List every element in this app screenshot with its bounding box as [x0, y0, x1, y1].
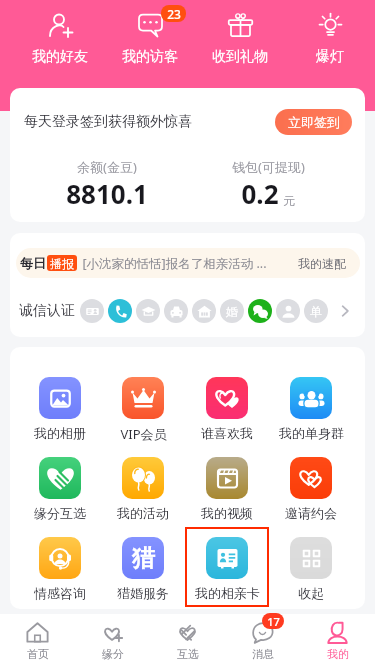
staticText: 每天登录签到获得额外惊喜 [24, 113, 192, 131]
button[interactable]: 我的 [300, 614, 375, 667]
staticText: 钱包(可提现) [232, 158, 305, 176]
button[interactable]: 余额(金豆) [26, 158, 187, 211]
button[interactable]: 谁喜欢我 [185, 367, 269, 447]
staticText: 我的速配 [298, 256, 346, 271]
button[interactable]: 学历认证 [136, 299, 160, 323]
button[interactable]: 互选 [150, 614, 225, 667]
staticText: 我的视频 [201, 505, 253, 521]
staticText: 立即签到 [288, 114, 340, 130]
staticText: 播报 [50, 256, 74, 271]
staticText: 每日 [20, 255, 46, 271]
button[interactable]: 手机认证 [108, 299, 132, 323]
button[interactable]: 收起 [269, 527, 353, 607]
button[interactable]: 每日 [16, 248, 360, 278]
button[interactable]: 诚信认证 [19, 297, 353, 325]
button[interactable]: 身份认证 [80, 299, 104, 323]
staticText: 23 [167, 6, 181, 22]
staticText: 谁喜欢我 [201, 425, 253, 441]
button[interactable]: 爆灯 [285, 0, 375, 88]
button[interactable]: 猎 [101, 527, 185, 607]
button[interactable]: 立即签到 [275, 109, 352, 135]
staticText: 我的好友 [32, 48, 88, 66]
staticText: 婚 [226, 304, 238, 319]
staticText: 我的活动 [117, 505, 169, 521]
staticText: 消息 [252, 647, 274, 661]
staticText: 收到礼物 [212, 48, 268, 66]
staticText: 爆灯 [316, 48, 344, 66]
button[interactable]: 婚 [220, 299, 244, 323]
staticText: 互选 [177, 647, 199, 661]
staticText: 我的相亲卡 [195, 585, 260, 601]
button[interactable]: 车辆认证 [164, 299, 188, 323]
button[interactable]: 我的视频 [185, 447, 269, 527]
button[interactable]: VIP会员 [101, 367, 185, 447]
button[interactable]: 我的单身群 [269, 367, 353, 447]
staticText: 17 [267, 614, 280, 629]
staticText: 邀请约会 [285, 505, 337, 521]
staticText: 我的相册 [34, 425, 86, 441]
staticText: 8810.1 [66, 176, 148, 211]
button[interactable]: 头像认证 [276, 299, 300, 323]
button[interactable]: 17 [225, 614, 300, 667]
button[interactable]: 邀请约会 [269, 447, 353, 527]
button[interactable]: 钱包(可提现) [187, 158, 349, 211]
staticText: 我的 [327, 647, 349, 661]
staticText: 猎婚服务 [117, 585, 169, 601]
button[interactable]: 房产认证 [192, 299, 216, 323]
staticText: 缘分 [102, 647, 124, 661]
button[interactable]: 收到礼物 [195, 0, 285, 88]
button[interactable]: 首页 [0, 614, 75, 667]
button[interactable]: 情感咨询 [18, 527, 101, 607]
staticText: 0.2 [241, 176, 279, 211]
button[interactable]: 缘分 [75, 614, 150, 667]
staticText: 收起 [298, 585, 324, 601]
staticText: 余额(金豆) [77, 158, 137, 176]
staticText: 情感咨询 [34, 585, 86, 601]
staticText: 首页 [27, 647, 49, 661]
staticText: 缘分互选 [34, 505, 86, 521]
staticText: [小沈家的恬恬]报名了相亲活动 ... [82, 255, 267, 272]
button[interactable]: 我的好友 [15, 0, 105, 88]
button[interactable]: 缘分互选 [18, 447, 101, 527]
staticText: 我的访客 [122, 48, 178, 66]
staticText: 诚信认证 [19, 302, 75, 320]
button[interactable]: 我的相亲卡 [185, 527, 269, 607]
button[interactable]: 我的相册 [18, 367, 101, 447]
button[interactable]: 我的活动 [101, 447, 185, 527]
button[interactable]: 单 [304, 299, 328, 323]
staticText: VIP会员 [120, 425, 167, 443]
other: 更多 [337, 303, 353, 319]
staticText: 元 [283, 193, 295, 208]
staticText: 单 [310, 304, 322, 319]
button[interactable]: 微信认证 [248, 299, 272, 323]
staticText: 猎 [132, 544, 155, 573]
button[interactable]: 我的访客 [105, 0, 195, 88]
staticText: 我的单身群 [279, 425, 344, 441]
